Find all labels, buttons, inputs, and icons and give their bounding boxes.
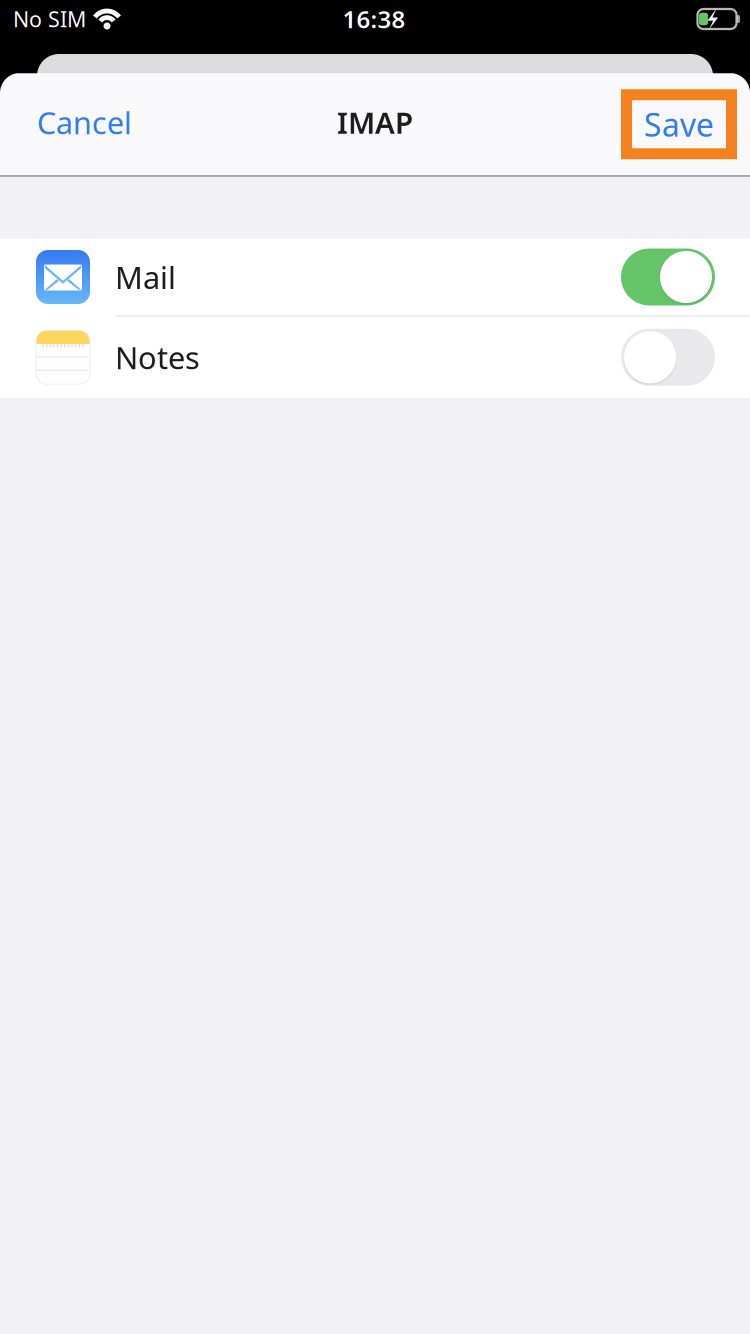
button[interactable]: Save	[621, 89, 750, 159]
staticText: Notes	[115, 337, 200, 378]
staticText: IMAP	[337, 103, 413, 142]
button[interactable]: Notes	[0, 317, 750, 398]
staticText: Mail	[115, 257, 176, 297]
button[interactable]: Cancel	[0, 84, 154, 165]
staticText: No SIM	[13, 5, 86, 33]
button[interactable]: Mail	[0, 239, 750, 317]
staticText: Save	[644, 103, 714, 145]
staticText: Cancel	[37, 102, 132, 143]
staticText: 16:38	[342, 3, 405, 35]
